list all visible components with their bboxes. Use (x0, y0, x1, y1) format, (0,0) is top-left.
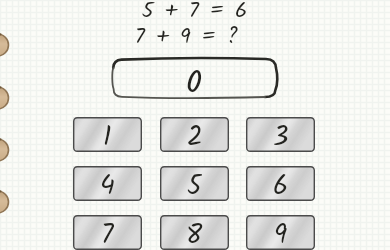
staticText: 2 (187, 116, 203, 151)
button[interactable]: 4 (73, 166, 142, 201)
staticText: 0 (186, 59, 203, 102)
button[interactable]: 2 (160, 117, 229, 152)
staticText: 1 (103, 116, 112, 151)
button[interactable]: 1 (73, 117, 142, 152)
button[interactable]: 0 (110, 57, 278, 100)
button[interactable]: 5 (160, 166, 229, 201)
button[interactable]: 8 (160, 215, 229, 250)
button[interactable]: 7 (73, 215, 142, 250)
button[interactable]: 6 (246, 166, 315, 201)
button[interactable]: 9 (246, 215, 315, 250)
staticText: 3 (273, 116, 289, 151)
button[interactable]: 3 (246, 117, 315, 152)
staticText: 7 + 9 = ? (0, 20, 382, 250)
staticText: 7 (101, 214, 114, 249)
staticText: 8 (186, 214, 203, 249)
staticText: 9 (274, 214, 288, 249)
staticText: 5 (187, 165, 202, 200)
staticText: 4 (100, 165, 115, 200)
staticText: 5 + 7 = 6 (0, 0, 390, 244)
staticText: 6 (273, 165, 289, 200)
